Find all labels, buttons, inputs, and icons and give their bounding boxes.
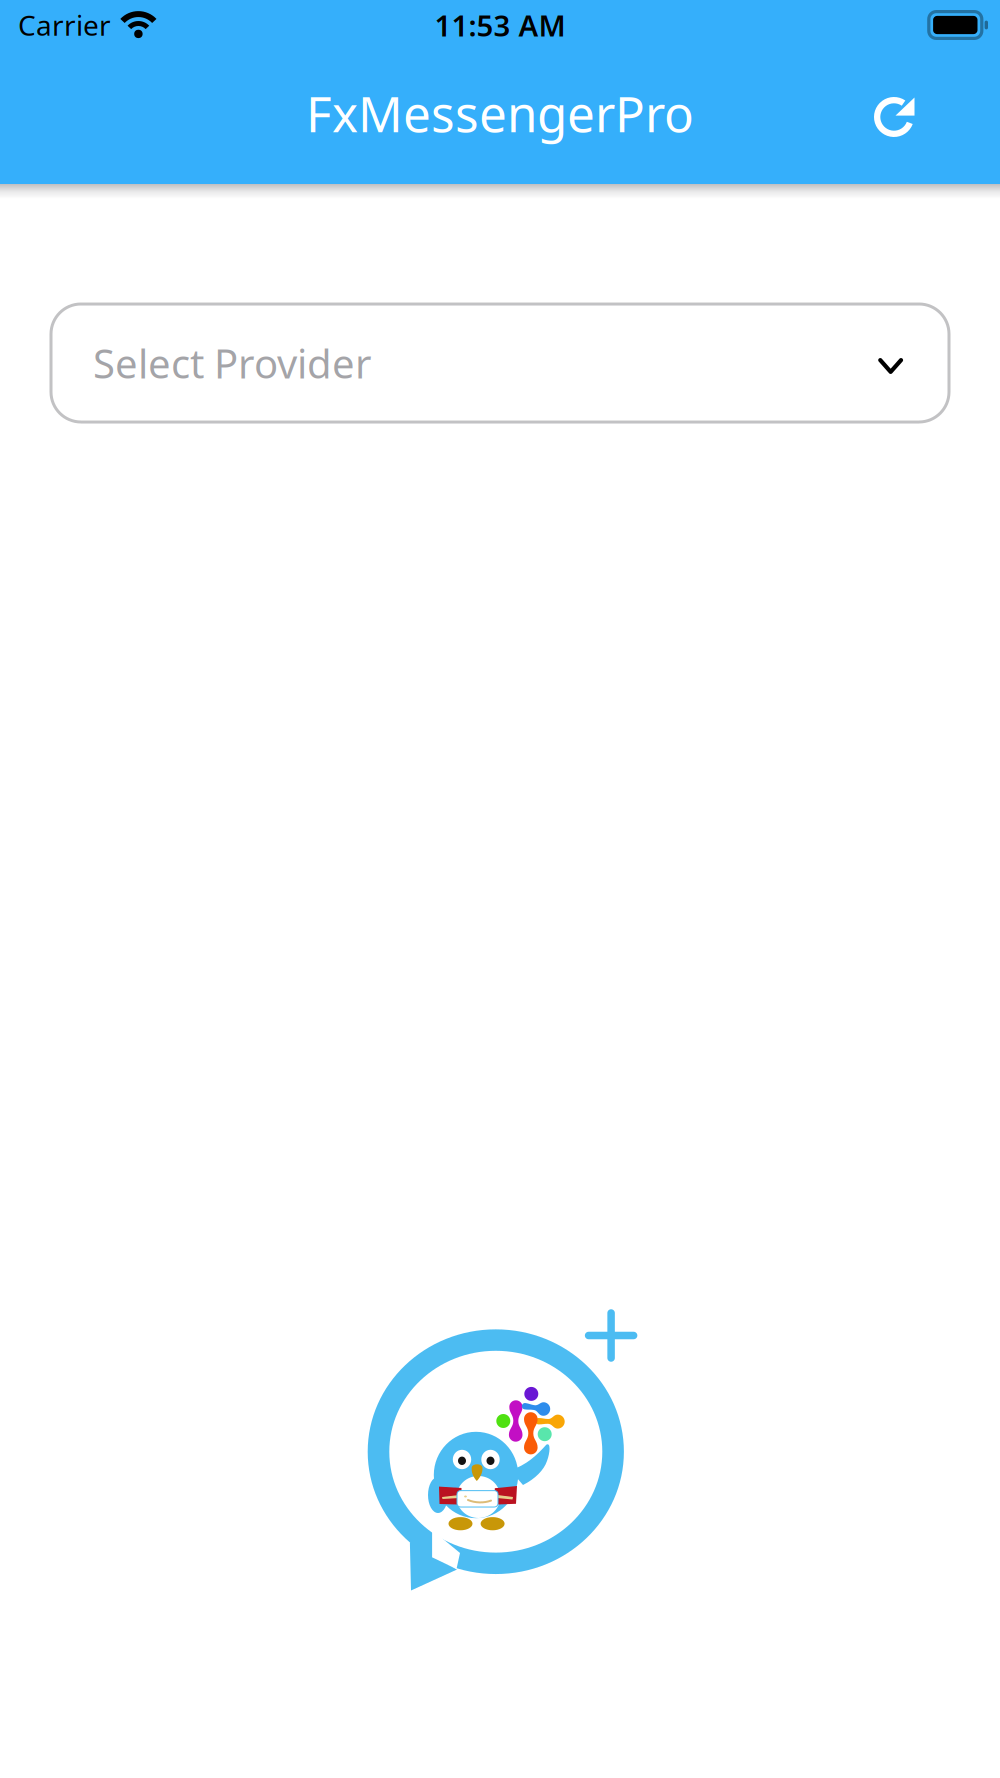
staticText: FxMessengerPro [306, 80, 694, 146]
staticText: Select Provider [93, 336, 372, 389]
button[interactable]: Select Provider [51, 304, 949, 422]
button[interactable]: Refresh [850, 71, 936, 163]
staticText: Carrier [18, 6, 111, 44]
staticText: 11:53 AM [434, 5, 565, 44]
